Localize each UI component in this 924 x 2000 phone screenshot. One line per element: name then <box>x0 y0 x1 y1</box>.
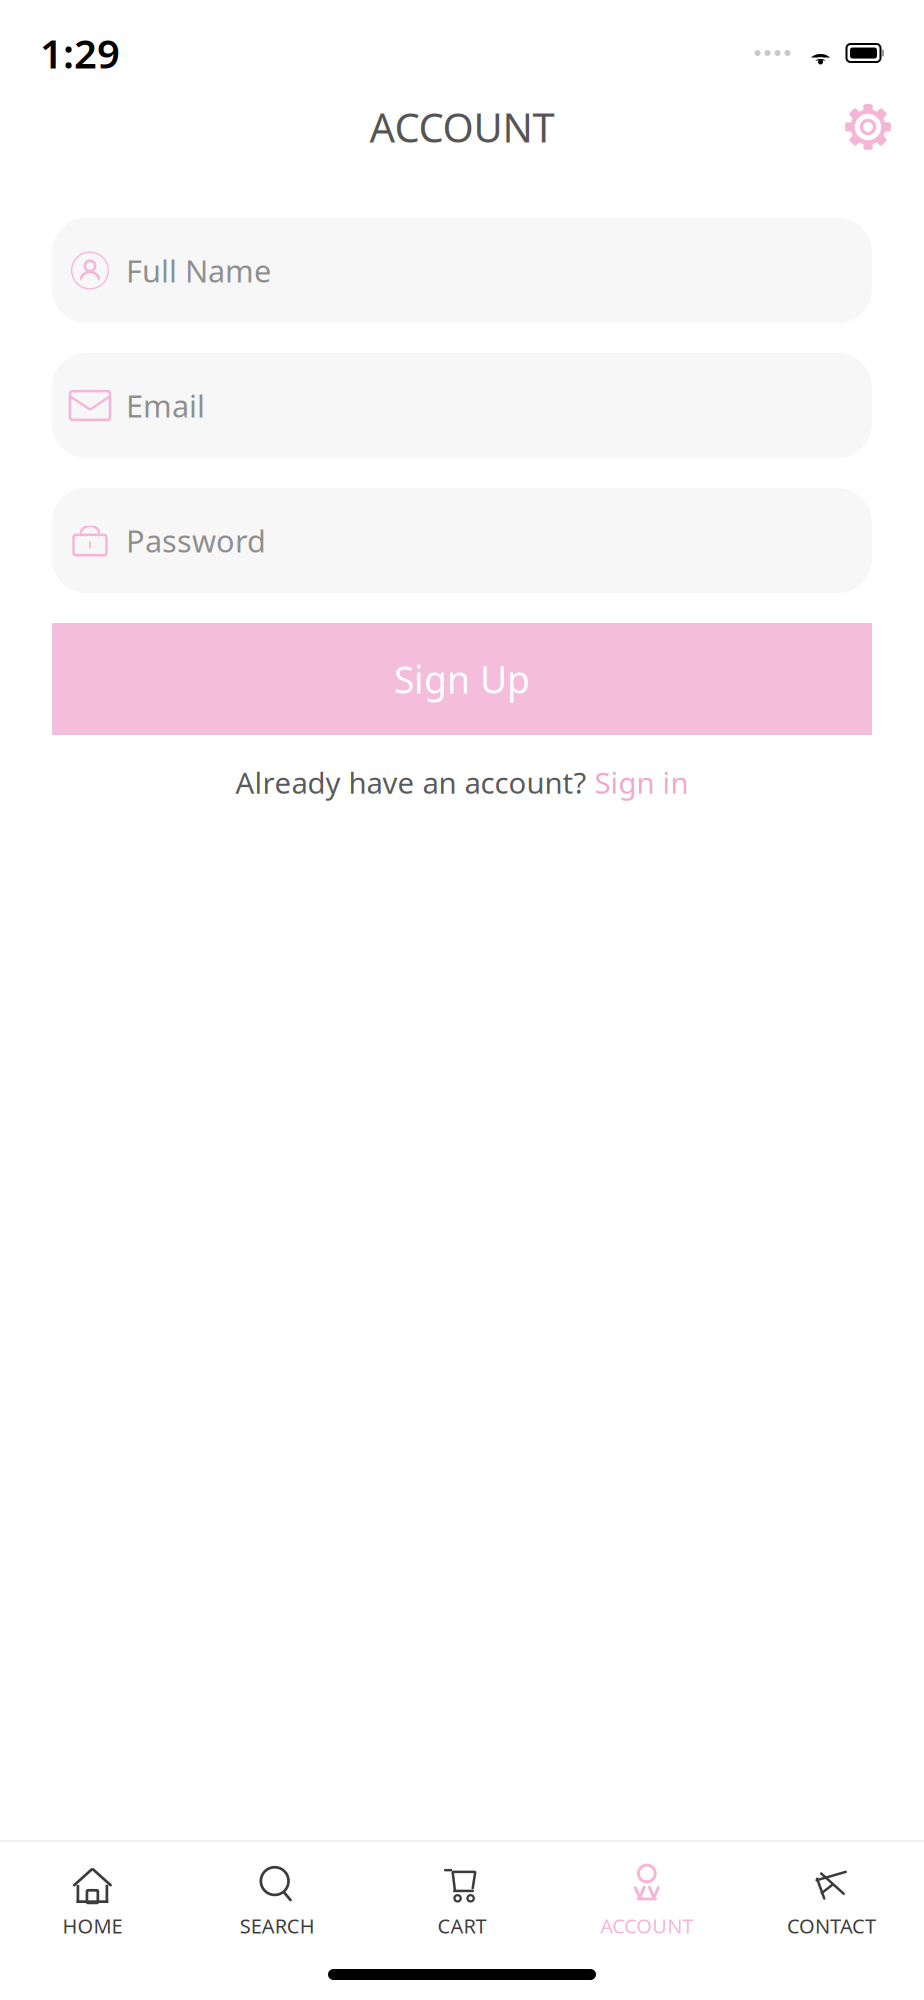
button[interactable]: CONTACT <box>739 1853 924 1945</box>
button[interactable]: CART <box>370 1853 554 1945</box>
staticText: ACCOUNT <box>600 1912 693 1939</box>
staticText: Full Name <box>126 250 271 291</box>
button[interactable]: Sign Up <box>52 623 872 735</box>
button[interactable]: SEARCH <box>185 1853 370 1945</box>
button[interactable]: Settings <box>836 95 900 159</box>
button[interactable]: Password <box>52 488 872 593</box>
button[interactable]: Sign in <box>594 763 688 802</box>
staticText: Already have an account? <box>235 763 594 802</box>
staticText: ACCOUNT <box>369 100 554 153</box>
staticText: Sign Up <box>394 654 530 704</box>
staticText: Password <box>126 520 266 561</box>
staticText: Email <box>126 385 205 426</box>
staticText: Sign in <box>594 763 688 802</box>
button[interactable]: HOME <box>0 1853 185 1945</box>
staticText: HOME <box>62 1912 122 1939</box>
staticText: CART <box>437 1912 486 1939</box>
button[interactable]: ACCOUNT <box>554 1853 739 1945</box>
staticText: CONTACT <box>787 1912 876 1939</box>
button[interactable]: Full Name <box>52 218 872 323</box>
staticText: SEARCH <box>240 1912 315 1939</box>
staticText: 1:29 <box>40 26 120 79</box>
button[interactable]: Email <box>52 353 872 458</box>
